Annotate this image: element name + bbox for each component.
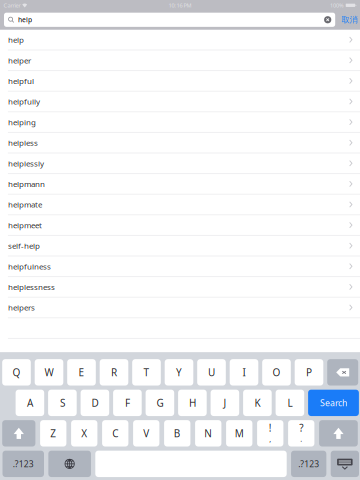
staticText: H (189, 396, 196, 410)
staticText: K (254, 396, 260, 410)
staticText: helpfully (8, 96, 40, 107)
staticText: Q (12, 365, 20, 379)
button[interactable]: help (0, 30, 360, 50)
button[interactable]: I (230, 359, 258, 385)
button[interactable]: helpers (0, 298, 360, 318)
button[interactable]: W (35, 359, 63, 385)
staticText: O (272, 365, 280, 379)
button[interactable]: helplessly (0, 153, 360, 174)
staticText: Carrier (3, 1, 20, 9)
button[interactable]: X (71, 420, 97, 446)
button[interactable]: H (178, 390, 207, 416)
button[interactable]: R (100, 359, 128, 385)
button[interactable]: Delete (327, 359, 358, 385)
staticText: ? (299, 421, 303, 435)
button[interactable]: C (102, 420, 128, 446)
button[interactable]: P (295, 359, 323, 385)
button[interactable]: U (197, 359, 226, 385)
button[interactable]: Z (40, 420, 66, 446)
button[interactable]: T (132, 359, 161, 385)
staticText: R (111, 365, 117, 379)
button[interactable]: O (262, 359, 291, 385)
button[interactable]: Search (308, 390, 359, 416)
button[interactable]: helpmeet (0, 215, 360, 236)
button[interactable]: help (4, 13, 335, 27)
button[interactable]: S (48, 390, 77, 416)
staticText: A (27, 396, 33, 410)
staticText: M (235, 426, 244, 440)
button[interactable]: F (113, 390, 142, 416)
button[interactable]: Shift (319, 420, 358, 446)
staticText: G (156, 396, 163, 410)
staticText: helpmann (8, 178, 45, 189)
button[interactable]: helplessness (0, 277, 360, 298)
staticText: X (81, 426, 87, 440)
staticText: help (8, 34, 24, 45)
button[interactable]: D (81, 390, 109, 416)
button[interactable]: helpful (0, 71, 360, 92)
button[interactable]: A (16, 390, 44, 416)
button[interactable]: self-help (0, 236, 360, 256)
button[interactable]: Next keyboard (48, 451, 91, 477)
staticText: Search (320, 397, 347, 409)
staticText: J (223, 396, 226, 410)
button[interactable]: J (211, 390, 239, 416)
button[interactable]: Y (165, 359, 193, 385)
button[interactable]: K (243, 390, 272, 416)
button[interactable]: E (67, 359, 96, 385)
button[interactable]: 取消 (340, 13, 360, 27)
button[interactable]: helping (0, 112, 360, 133)
staticText: L (287, 396, 292, 410)
staticText: helpers (8, 302, 35, 313)
button[interactable]: N (195, 420, 221, 446)
staticText: helping (8, 117, 36, 127)
button[interactable]: ? (288, 420, 314, 446)
staticText: , (269, 434, 271, 444)
staticText: 10:16 PM (168, 1, 191, 9)
staticText: Z (50, 426, 56, 440)
button[interactable]: V (133, 420, 159, 446)
button[interactable]: .?123 (291, 451, 326, 477)
button[interactable]: B (164, 420, 190, 446)
staticText: F (125, 396, 130, 410)
staticText: W (44, 365, 53, 379)
button[interactable]: ! (257, 420, 283, 446)
staticText: .?123 (298, 458, 319, 470)
button[interactable]: G (146, 390, 174, 416)
button[interactable]: L (276, 390, 304, 416)
staticText: helplessness (8, 281, 55, 292)
button[interactable]: helpmann (0, 174, 360, 195)
staticText: helpfulness (8, 261, 51, 272)
staticText: 取消 (342, 15, 358, 25)
staticText: helplessly (8, 158, 44, 169)
staticText: 100% (330, 1, 344, 9)
button[interactable]: M (226, 420, 252, 446)
staticText: T (143, 365, 149, 379)
staticText: V (143, 426, 149, 440)
staticText: . (300, 434, 302, 444)
button[interactable]: helpless (0, 133, 360, 153)
button[interactable]: helpmate (0, 195, 360, 215)
staticText: .?123 (13, 458, 34, 470)
staticText: Y (176, 365, 182, 379)
button[interactable]: .?123 (2, 451, 44, 477)
staticText: B (174, 426, 181, 440)
button[interactable]: Q (2, 359, 31, 385)
button[interactable]: Shift (2, 420, 35, 446)
button[interactable]: helper (0, 50, 360, 71)
staticText: N (204, 426, 212, 440)
button[interactable]: helpfully (0, 92, 360, 112)
staticText: P (306, 365, 312, 379)
staticText: I (242, 365, 245, 379)
staticText: helpful (8, 75, 34, 86)
button[interactable]: Hide keyboard (331, 451, 359, 477)
staticText: helpless (8, 137, 38, 148)
staticText: E (78, 365, 84, 379)
staticText: helpmate (8, 199, 42, 210)
staticText: help (18, 15, 32, 24)
button[interactable]: helpfulness (0, 256, 360, 277)
staticText: D (91, 396, 98, 410)
staticText: C (112, 426, 118, 440)
staticText: ! (269, 421, 272, 435)
